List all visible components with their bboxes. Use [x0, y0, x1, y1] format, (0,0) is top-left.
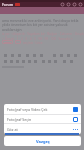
button[interactable]: Tag	[2, 40, 13, 44]
button[interactable]: Format	[10, 53, 15, 58]
button[interactable]: Toolbar action	[59, 2, 65, 7]
button[interactable]: Toolbar action	[65, 2, 71, 7]
button[interactable]: Format	[47, 59, 52, 64]
button[interactable]: Fotoğraf veya Video Çek	[4, 104, 81, 114]
button[interactable]: Format	[9, 59, 14, 64]
button[interactable]: Tag	[15, 40, 21, 44]
button[interactable]: Toolbar action	[71, 2, 77, 7]
button[interactable]: Format	[3, 59, 8, 64]
button[interactable]: Format	[21, 59, 26, 64]
staticText: < Ónsek · 1 · 2 · 3 · 4 · 5 · 98 · 99 · …	[2, 37, 73, 41]
button[interactable]: Vazgeç	[4, 136, 81, 146]
staticText: yildiz örsnetum bis bit yer acisine yaku…	[2, 22, 68, 27]
button[interactable]: Format	[25, 53, 30, 58]
button[interactable]: Format	[53, 59, 58, 64]
button[interactable]: Format	[73, 53, 78, 58]
button[interactable]: Format	[3, 53, 8, 58]
button[interactable]: Format	[41, 59, 46, 64]
button[interactable]: Göz at	[4, 124, 81, 134]
button[interactable]: Format	[39, 53, 44, 58]
button[interactable]: Format	[17, 53, 22, 58]
button[interactable]: Format	[15, 59, 20, 64]
button[interactable]: Format	[69, 59, 74, 64]
button[interactable]: Format	[33, 59, 38, 64]
staticText: Vazgeç	[36, 139, 50, 144]
button[interactable]: Format	[52, 53, 57, 58]
button[interactable]: Format	[62, 59, 67, 64]
button[interactable]: Format	[27, 59, 32, 64]
staticText: seçiniz · Liste	[23, 41, 43, 45]
staticText: is yer · ülsperiit · Sayıdam bir · Buğun…	[2, 32, 84, 36]
button[interactable]: Format	[32, 53, 37, 58]
button[interactable]: Toolbar action	[77, 2, 83, 7]
staticText: Göz at	[7, 127, 18, 132]
staticText: ama mesmek bi eve anliniyorki. Yani dosy…	[2, 18, 79, 23]
button[interactable]: Format	[59, 53, 64, 58]
staticText: acsiklarsigin	[2, 27, 22, 32]
staticText: Fotoğraf veya Video Çek	[7, 107, 48, 112]
button[interactable]: Fotoğraf Seçin	[4, 115, 81, 123]
staticText: Forum	[2, 2, 14, 7]
staticText: Fotoğraf Seçin	[7, 117, 32, 122]
button[interactable]: Format	[66, 53, 71, 58]
